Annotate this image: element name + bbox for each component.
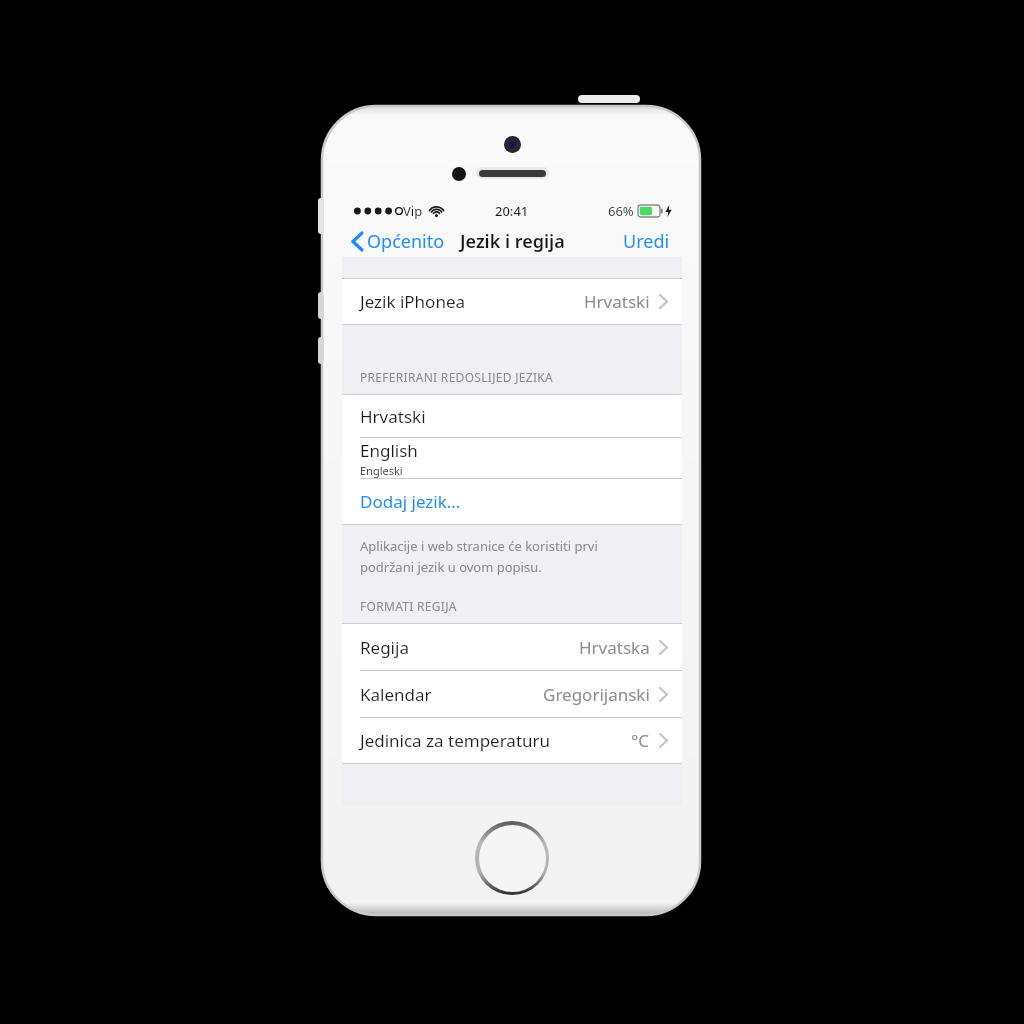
staticText: Engleski <box>360 463 403 478</box>
staticText: Hrvatski <box>360 405 426 428</box>
button[interactable]: Uredi <box>611 225 682 257</box>
staticText: Uredi <box>623 229 670 254</box>
button[interactable]: Kalendar <box>342 671 682 717</box>
button[interactable]: Regija <box>342 624 682 670</box>
staticText: 66% <box>608 202 634 220</box>
staticText: Jedinica za temperaturu <box>360 729 551 752</box>
staticText: Jezik iPhonea <box>360 290 466 313</box>
button[interactable]: Jezik iPhonea <box>342 279 682 324</box>
staticText: Općenito <box>367 229 445 254</box>
button[interactable]: Dodaj jezik… <box>342 479 682 524</box>
button[interactable]: English <box>342 438 682 478</box>
button[interactable]: Općenito <box>342 225 453 257</box>
staticText: FORMATI REGIJA <box>360 598 457 614</box>
staticText: podržani jezik u ovom popisu. <box>360 558 542 576</box>
button[interactable]: Home <box>475 821 549 895</box>
staticText: Vip <box>403 202 423 220</box>
staticText: PREFERIRANI REDOSLIJED JEZIKA <box>360 369 553 385</box>
staticText: English <box>360 439 418 462</box>
button[interactable]: Hrvatski <box>342 395 682 437</box>
staticText: 20:41 <box>495 202 529 220</box>
staticText: Hrvatski <box>584 290 650 313</box>
staticText: Gregorijanski <box>543 683 650 706</box>
staticText: Kalendar <box>360 683 432 706</box>
staticText: Hrvatska <box>579 636 650 659</box>
staticText: Dodaj jezik… <box>360 490 461 513</box>
staticText: Aplikacije i web stranice će koristiti p… <box>360 537 598 555</box>
button[interactable]: Jedinica za temperaturu <box>342 718 682 763</box>
staticText: Jezik i regija <box>460 229 565 254</box>
staticText: Regija <box>360 636 409 659</box>
staticText: °C <box>631 729 650 752</box>
